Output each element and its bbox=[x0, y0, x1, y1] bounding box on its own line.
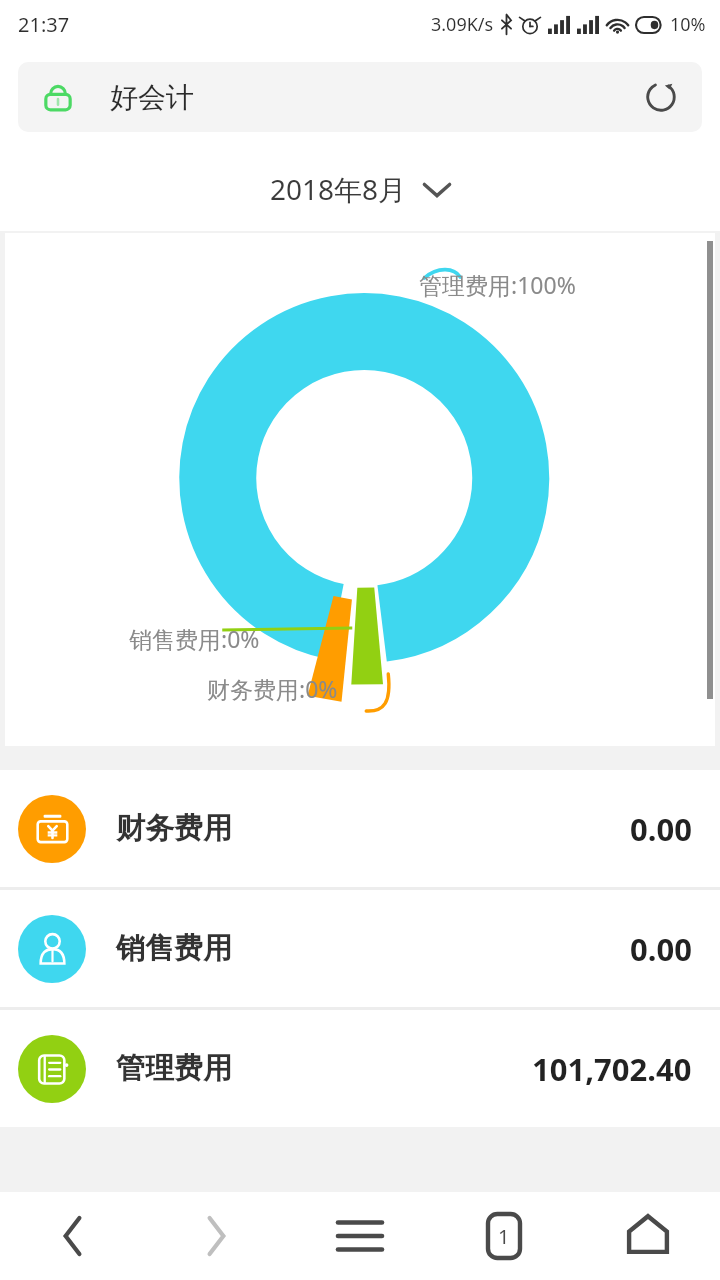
staticText: 财务费用 bbox=[116, 810, 232, 847]
staticText: 1 bbox=[498, 1223, 510, 1250]
button[interactable]: Menu bbox=[288, 1192, 432, 1280]
button[interactable]: 2018年8月 bbox=[244, 160, 477, 218]
button[interactable]: Forward bbox=[144, 1192, 288, 1280]
staticText: 0.00 bbox=[630, 808, 692, 850]
button[interactable]: 销售费用 bbox=[0, 890, 720, 1007]
staticText: 管理费用:100% bbox=[419, 269, 576, 300]
button[interactable]: Refresh bbox=[636, 72, 686, 122]
staticText: 101,702.40 bbox=[532, 1048, 692, 1090]
staticText: 管理费用 bbox=[116, 1050, 232, 1087]
button[interactable]: 管理费用 bbox=[0, 1010, 720, 1127]
staticText: 10% bbox=[670, 12, 706, 37]
button[interactable]: 财务费用 bbox=[0, 770, 720, 887]
staticText: 0.00 bbox=[630, 928, 692, 970]
staticText: 销售费用:0% bbox=[129, 623, 260, 654]
staticText: 好会计 bbox=[110, 80, 194, 115]
staticText: 2018年8月 bbox=[270, 170, 407, 208]
button[interactable]: Back bbox=[0, 1192, 144, 1280]
staticText: 财务费用:0% bbox=[207, 673, 338, 704]
button[interactable]: Home bbox=[576, 1192, 720, 1280]
staticText: 销售费用 bbox=[116, 930, 232, 967]
button[interactable]: Secure connection bbox=[34, 73, 82, 121]
button[interactable]: Tabs bbox=[432, 1192, 576, 1280]
staticText: 21:37 bbox=[18, 11, 70, 38]
staticText: 3.09K/s bbox=[431, 12, 494, 37]
